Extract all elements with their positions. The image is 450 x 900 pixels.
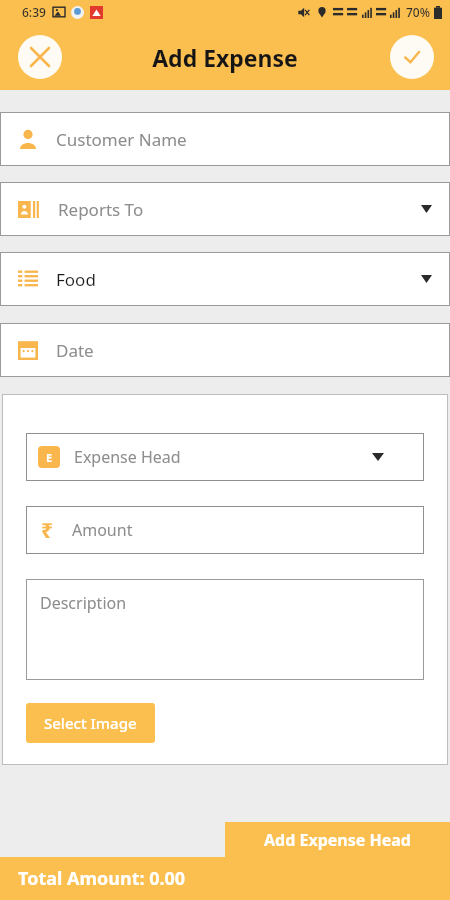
button[interactable]: E — [26, 433, 424, 481]
staticText: Customer Name — [56, 128, 187, 151]
staticText: 70% — [406, 4, 430, 20]
staticText: Expense Head — [74, 446, 181, 468]
staticText: E — [46, 450, 53, 465]
button[interactable]: Reports To — [0, 182, 450, 236]
button[interactable]: Food — [0, 252, 450, 306]
staticText: Select Image — [44, 713, 137, 733]
staticText: Total Amount: 0.00 — [18, 866, 186, 891]
button[interactable]: Close — [18, 35, 62, 79]
button[interactable]: Add Expense Head — [225, 822, 450, 857]
staticText: Add Expense Head — [264, 829, 411, 851]
staticText: Food — [56, 268, 96, 291]
staticText: Date — [56, 339, 94, 362]
staticText: Description — [40, 592, 127, 614]
staticText: Add Expense — [152, 42, 298, 73]
button[interactable]: Date — [0, 323, 450, 377]
button[interactable]: Customer Name — [0, 112, 450, 166]
staticText: Reports To — [58, 198, 144, 221]
button[interactable]: Save — [390, 35, 434, 79]
button[interactable]: Description — [26, 579, 424, 680]
staticText: 6:39 — [22, 4, 46, 20]
staticText: Amount — [72, 519, 133, 541]
button[interactable]: Select Image — [26, 703, 155, 743]
staticText: ₹ — [41, 516, 54, 545]
button[interactable]: ₹ — [26, 506, 424, 554]
